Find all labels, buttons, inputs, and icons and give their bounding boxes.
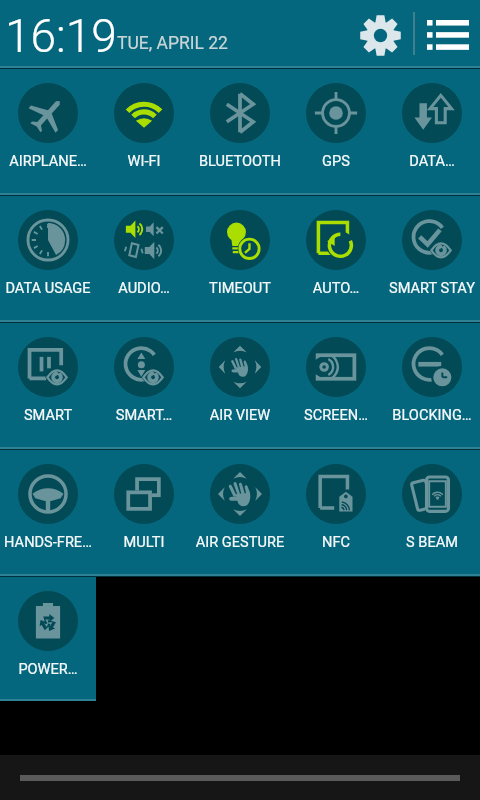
- staticText: BLOCKING…: [384, 406, 480, 423]
- button[interactable]: BLOCKING…: [384, 320, 480, 447]
- button[interactable]: AIR VIEW: [192, 320, 288, 447]
- button[interactable]: HANDS-FRE…: [0, 447, 96, 574]
- button[interactable]: MULTI: [96, 447, 192, 574]
- button[interactable]: S BEAM: [384, 447, 480, 574]
- staticText: SMART: [0, 406, 96, 423]
- staticText: MULTI: [96, 533, 192, 550]
- staticText: 16:19: [5, 9, 117, 63]
- button[interactable]: Settings: [354, 9, 406, 61]
- staticText: DATA…: [384, 152, 480, 169]
- staticText: HANDS-FRE…: [0, 533, 96, 550]
- staticText: GPS: [288, 152, 384, 169]
- button[interactable]: SCREEN…: [288, 320, 384, 447]
- button[interactable]: WI-FI: [96, 66, 192, 193]
- button[interactable]: AUDIO…: [96, 193, 192, 320]
- button[interactable]: POWER…: [0, 574, 96, 701]
- staticText: AUDIO…: [96, 279, 192, 296]
- staticText: S BEAM: [384, 533, 480, 550]
- button[interactable]: AIRPLANE…: [0, 66, 96, 193]
- button[interactable]: NFC: [288, 447, 384, 574]
- staticText: SMART…: [96, 406, 192, 423]
- staticText: AIR VIEW: [192, 406, 288, 423]
- staticText: TUE, APRIL 22: [117, 33, 228, 54]
- button[interactable]: DATA USAGE: [0, 193, 96, 320]
- staticText: WI-FI: [96, 152, 192, 169]
- staticText: DATA USAGE: [0, 279, 96, 296]
- button[interactable]: AUTO…: [288, 193, 384, 320]
- button[interactable]: Edit quick settings: [417, 9, 475, 61]
- button[interactable]: AIR GESTURE: [192, 447, 288, 574]
- staticText: AUTO…: [288, 279, 384, 296]
- staticText: POWER…: [0, 660, 96, 677]
- staticText: AIR GESTURE: [192, 533, 288, 550]
- button[interactable]: SMART…: [96, 320, 192, 447]
- button[interactable]: TIMEOUT: [192, 193, 288, 320]
- button[interactable]: BLUETOOTH: [192, 66, 288, 193]
- staticText: NFC: [288, 533, 384, 550]
- staticText: TIMEOUT: [192, 279, 288, 296]
- button[interactable]: GPS: [288, 66, 384, 193]
- staticText: SCREEN…: [288, 406, 384, 423]
- staticText: SMART STAY: [384, 279, 480, 296]
- button[interactable]: SMART STAY: [384, 193, 480, 320]
- button[interactable]: DATA…: [384, 66, 480, 193]
- button[interactable]: SMART: [0, 320, 96, 447]
- staticText: BLUETOOTH: [192, 152, 288, 169]
- staticText: AIRPLANE…: [0, 152, 96, 169]
